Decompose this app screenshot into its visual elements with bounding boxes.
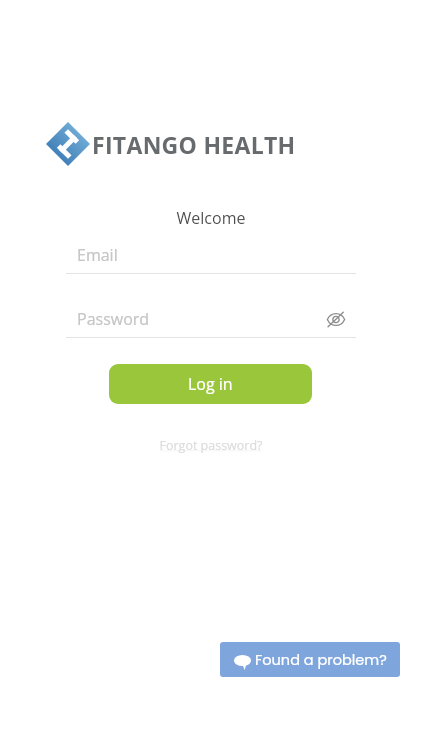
button[interactable]: Found a problem? (220, 642, 400, 677)
button[interactable]: Log in (109, 364, 312, 404)
staticText: Welcome (0, 207, 422, 229)
staticText: Log in (188, 373, 233, 395)
staticText: Forgot password? (0, 437, 422, 454)
button[interactable]: Forgot password? (0, 437, 422, 454)
button[interactable]: Show password (322, 305, 350, 333)
staticText: Email (77, 244, 118, 266)
staticText: FITANGO HEALTH (92, 129, 296, 160)
staticText: Found a problem? (255, 650, 387, 670)
staticText: Password (77, 308, 150, 330)
